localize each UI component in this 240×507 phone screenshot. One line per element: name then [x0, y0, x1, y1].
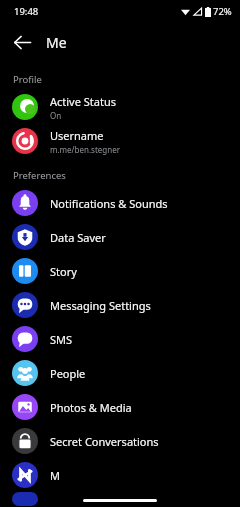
staticText: m.me/ben.stegner — [50, 144, 121, 155]
staticText: Data Saver — [50, 230, 106, 245]
button[interactable]: Back — [4, 24, 40, 60]
button[interactable]: Messaging Settings — [0, 288, 240, 322]
other: More settings — [12, 492, 38, 506]
staticText: Username — [50, 128, 104, 143]
button[interactable]: More settings — [0, 492, 240, 506]
staticText: SMS — [50, 332, 73, 347]
staticText: Notifications & Sounds — [50, 196, 168, 211]
button[interactable]: M — [0, 458, 240, 492]
staticText: Messaging Settings — [50, 298, 151, 313]
staticText: Secret Conversations — [50, 434, 159, 449]
button[interactable]: Data Saver — [0, 220, 240, 254]
staticText: People — [50, 366, 86, 381]
staticText: 72% — [213, 5, 232, 18]
staticText: Me — [46, 33, 67, 52]
staticText: Profile — [13, 73, 42, 86]
staticText: On — [50, 110, 62, 121]
button[interactable]: Secret Conversations — [0, 424, 240, 458]
button[interactable]: Photos & Media — [0, 390, 240, 424]
button[interactable]: Active Status — [0, 90, 240, 124]
staticText: M — [50, 468, 60, 483]
staticText: Story — [50, 264, 77, 279]
button[interactable]: Story — [0, 254, 240, 288]
button[interactable]: Notifications & Sounds — [0, 186, 240, 220]
button[interactable]: People — [0, 356, 240, 390]
button[interactable]: Username — [0, 124, 240, 158]
staticText: Preferences — [13, 169, 66, 182]
staticText: Photos & Media — [50, 400, 132, 415]
staticText: 19:48 — [14, 5, 39, 18]
staticText: Active Status — [50, 94, 116, 109]
button[interactable]: SMS — [0, 322, 240, 356]
